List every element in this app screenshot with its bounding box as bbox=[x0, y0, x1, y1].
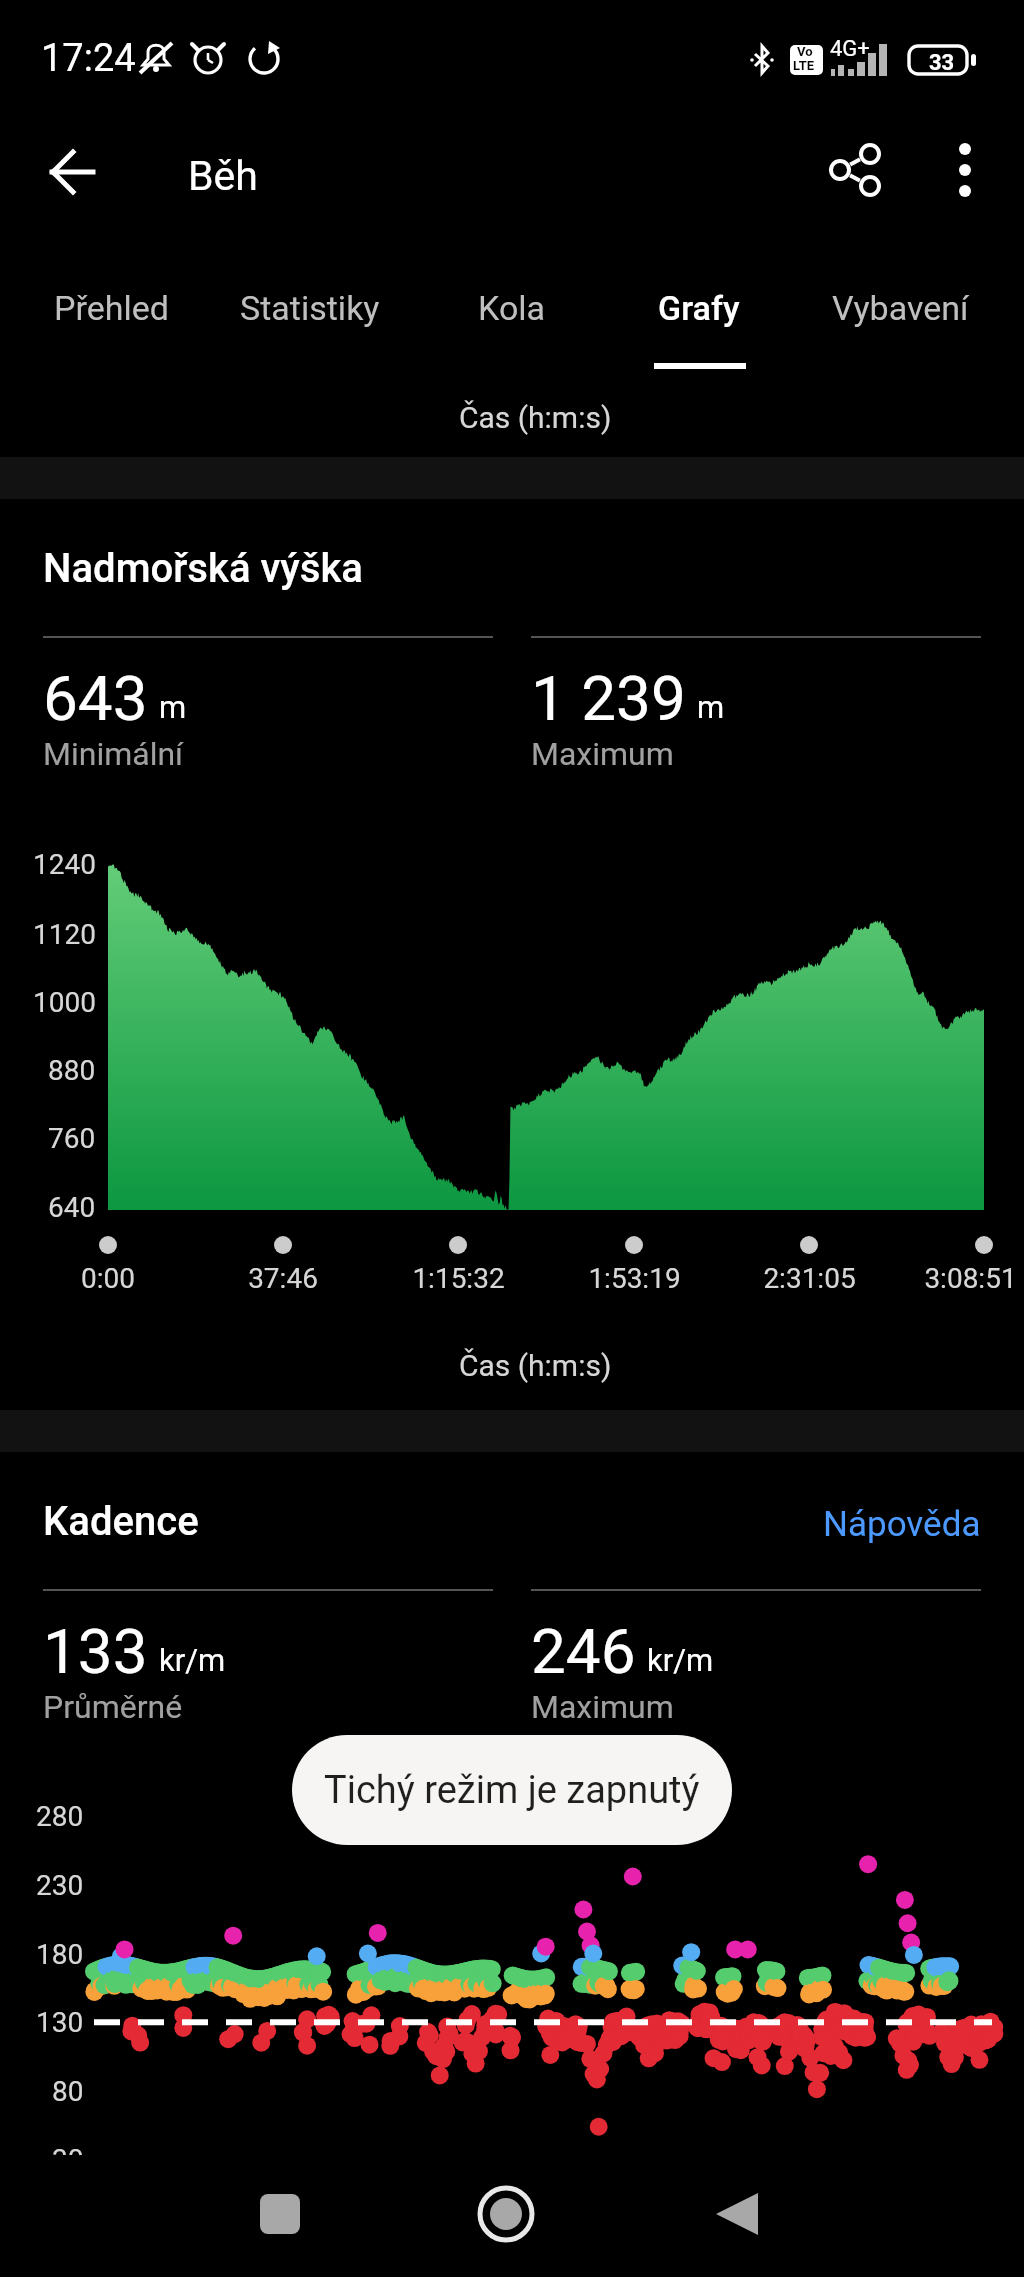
staticText: 1:53:19 bbox=[588, 1262, 681, 1295]
staticText: 30 bbox=[52, 2143, 84, 2176]
staticText: 643 bbox=[43, 662, 148, 735]
button[interactable]: Kola bbox=[412, 250, 612, 375]
staticText: Průměrné bbox=[43, 1688, 183, 1726]
staticText: Běh bbox=[188, 152, 258, 200]
button[interactable]: Recents bbox=[235, 2169, 325, 2259]
staticText: 1 239 bbox=[531, 662, 686, 735]
staticText: Čas (h:m:s) bbox=[459, 1348, 612, 1383]
button[interactable]: Grafy bbox=[599, 250, 799, 375]
staticText: Tichý režim je zapnutý bbox=[324, 1768, 700, 1813]
staticText: kr/m bbox=[159, 1642, 226, 1678]
staticText: kr/m bbox=[647, 1642, 714, 1678]
staticText: m bbox=[697, 689, 725, 725]
staticText: 760 bbox=[48, 1122, 96, 1155]
button[interactable]: Share bbox=[805, 120, 905, 220]
staticText: 880 bbox=[48, 1054, 96, 1087]
staticText: 17:24 bbox=[41, 36, 136, 81]
staticText: Grafy bbox=[658, 288, 740, 328]
staticText: Nápověda bbox=[823, 1504, 981, 1545]
staticText: 4G+ bbox=[830, 36, 870, 62]
button[interactable]: Back bbox=[692, 2169, 782, 2259]
staticText: LTE bbox=[793, 58, 815, 73]
staticText: Minimální bbox=[43, 735, 184, 773]
staticText: Statistiky bbox=[240, 288, 380, 328]
staticText: 1000 bbox=[33, 986, 96, 1019]
staticText: 1:15:32 bbox=[412, 1262, 505, 1295]
button[interactable]: Přehled bbox=[11, 250, 211, 375]
staticText: 2:31:05 bbox=[763, 1262, 856, 1295]
staticText: 230 bbox=[36, 1869, 84, 1902]
staticText: Maximum bbox=[531, 1688, 674, 1726]
staticText: Čas (h:m:s) bbox=[459, 400, 612, 435]
staticText: 0:00 bbox=[81, 1262, 135, 1295]
button[interactable]: More options bbox=[915, 120, 1015, 220]
staticText: 1240 bbox=[33, 848, 96, 881]
staticText: Vo bbox=[797, 45, 813, 59]
staticText: 640 bbox=[48, 1191, 96, 1224]
staticText: Maximum bbox=[531, 735, 674, 773]
staticText: Kola bbox=[478, 288, 546, 328]
button[interactable]: Home bbox=[461, 2169, 551, 2259]
staticText: 133 bbox=[43, 1615, 148, 1688]
staticText: m bbox=[159, 689, 187, 725]
button[interactable]: Nápověda bbox=[790, 1488, 981, 1560]
button[interactable]: Tichý režim je zapnutý bbox=[292, 1735, 732, 1845]
staticText: 80 bbox=[52, 2075, 84, 2108]
staticText: 280 bbox=[36, 1800, 84, 1833]
staticText: Kadence bbox=[43, 1498, 199, 1545]
button[interactable]: Statistiky bbox=[210, 250, 410, 375]
staticText: 130 bbox=[36, 2006, 84, 2039]
staticText: 1120 bbox=[33, 918, 96, 951]
staticText: Nadmořská výška bbox=[43, 545, 363, 592]
staticText: 33 bbox=[929, 50, 955, 76]
button[interactable]: Vybavení bbox=[800, 250, 1000, 375]
staticText: 246 bbox=[531, 1615, 636, 1688]
staticText: Přehled bbox=[54, 288, 169, 328]
staticText: Vybavení bbox=[832, 288, 969, 328]
button[interactable]: Back bbox=[20, 120, 124, 224]
staticText: 37:46 bbox=[248, 1262, 318, 1295]
staticText: 180 bbox=[36, 1938, 84, 1971]
staticText: 3:08:51 bbox=[924, 1262, 1017, 1295]
